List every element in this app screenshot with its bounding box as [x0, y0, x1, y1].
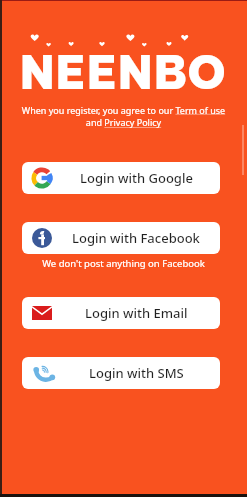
staticText: Login with Google [80, 169, 193, 187]
button[interactable]: Login with Google [22, 162, 220, 194]
staticText: Login with Facebook [72, 229, 200, 247]
button[interactable]: Login with Facebook [22, 222, 220, 254]
button[interactable]: Login with Email [22, 297, 220, 329]
staticText: Login with Email [85, 304, 188, 322]
staticText: Login with SMS [89, 364, 184, 382]
staticText: We don't post anything on Facebook [0, 257, 247, 270]
button[interactable]: Login with SMS [22, 357, 220, 389]
staticText: NEENBO [20, 44, 227, 101]
staticText: When you register, you agree to our Term… [16, 104, 231, 129]
